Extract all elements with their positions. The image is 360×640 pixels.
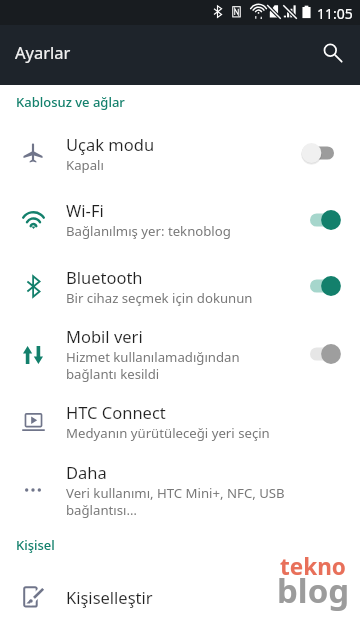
staticText: Kişisel	[16, 536, 55, 554]
button[interactable]: Uçak modu	[0, 119, 360, 189]
staticText: tekno	[280, 551, 346, 582]
staticText: Mobil veri	[66, 325, 143, 347]
staticText: Hizmet kullanılamadığından bağlantı kesi…	[66, 348, 240, 383]
staticText: Ayarlar	[15, 41, 71, 63]
button[interactable]: Turn off	[300, 342, 344, 366]
button[interactable]: Kişiselleştir	[0, 572, 360, 640]
button[interactable]: HTC Connect	[0, 387, 360, 457]
staticText: Bir cihaz seçmek için dokunun	[66, 289, 253, 307]
staticText: Wi-Fi	[66, 199, 104, 221]
staticText: Veri kullanımı, HTC Mini+, NFC, USB bağl…	[66, 484, 285, 519]
button[interactable]: Wi-Fi	[0, 185, 360, 255]
staticText: blog	[277, 568, 350, 613]
button[interactable]: Bluetooth	[0, 252, 360, 322]
button[interactable]: Mobil veri	[0, 311, 360, 397]
staticText: Kablosuz ve ağlar	[16, 93, 125, 111]
staticText: Uçak modu	[66, 133, 155, 155]
button[interactable]: Daha	[0, 447, 360, 533]
staticText: HTC Connect	[66, 401, 166, 423]
staticText: Bluetooth	[66, 266, 143, 288]
button[interactable]: Turn on	[300, 141, 344, 165]
staticText: Kapalı	[66, 156, 104, 174]
button[interactable]: Search	[304, 27, 360, 83]
button[interactable]: Turn off	[300, 208, 344, 232]
button[interactable]: Turn off	[300, 274, 344, 298]
staticText: Medyanın yürütüleceği yeri seçin	[66, 424, 270, 442]
staticText: Daha	[66, 461, 107, 483]
staticText: 11:05	[317, 4, 353, 23]
staticText: Kişiselleştir	[66, 586, 153, 608]
staticText: Bağlanılmış yer: teknoblog	[66, 222, 231, 240]
